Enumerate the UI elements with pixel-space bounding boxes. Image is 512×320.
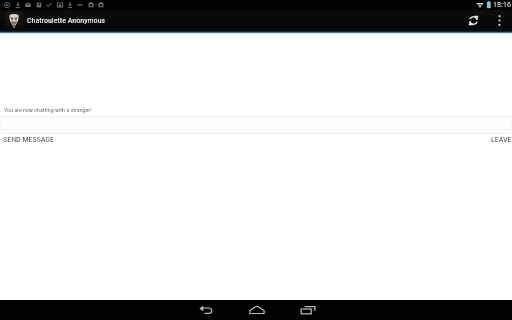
button[interactable]: More options	[486, 10, 512, 31]
button[interactable]: Refresh	[460, 10, 486, 31]
staticText: You are now chatting with a stranger!	[4, 106, 92, 113]
button[interactable]: SEND MESSAGE	[0, 134, 55, 145]
staticText: 18:16	[493, 0, 511, 10]
staticText: SEND MESSAGE	[3, 135, 55, 144]
button[interactable]: Home	[231, 300, 282, 320]
button[interactable]: Back	[180, 300, 231, 320]
button[interactable]: Recent apps	[282, 300, 333, 320]
staticText: Chatroulette Anonymous	[27, 16, 106, 25]
button[interactable]: LEAVE	[491, 134, 512, 145]
staticText: LEAVE	[491, 135, 512, 144]
